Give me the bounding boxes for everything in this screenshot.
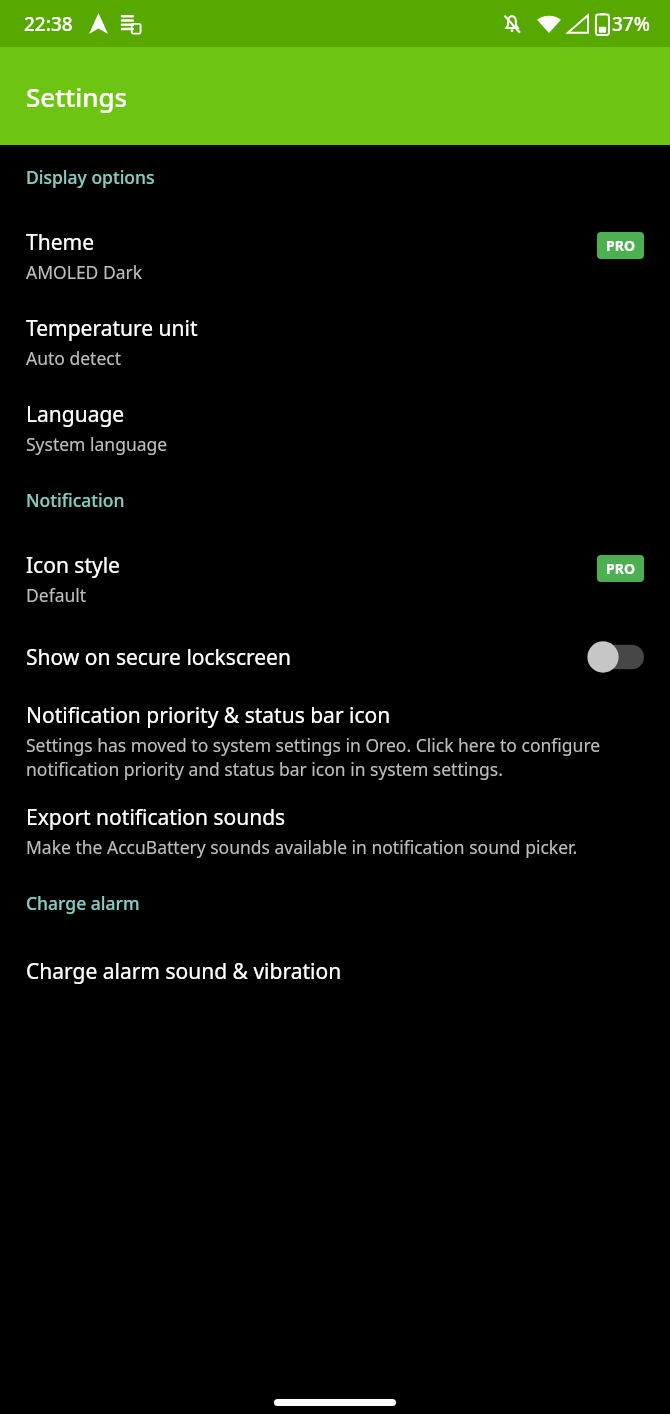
button[interactable]: Charge alarm sound & vibration: [0, 957, 670, 986]
button[interactable]: PRO: [597, 555, 644, 582]
button[interactable]: Show on secure lockscreen toggle: [586, 640, 644, 674]
staticText: Charge alarm sound & vibration: [26, 957, 342, 986]
staticText: Export notification sounds: [26, 803, 286, 832]
staticText: Default: [26, 583, 87, 607]
staticText: Make the AccuBattery sounds available in…: [26, 835, 578, 859]
staticText: Notification: [26, 488, 644, 512]
button[interactable]: Notification priority & status bar icon: [0, 701, 670, 781]
button[interactable]: PRO: [597, 232, 644, 259]
staticText: Notification priority & status bar icon: [26, 701, 391, 730]
button[interactable]: Export notification sounds: [0, 803, 670, 859]
staticText: 22:38: [24, 11, 73, 37]
button[interactable]: Icon style: [0, 551, 670, 607]
button[interactable]: Theme: [0, 228, 670, 284]
staticText: Show on secure lockscreen: [26, 643, 586, 672]
staticText: Settings: [26, 79, 128, 114]
staticText: Language: [26, 400, 125, 429]
staticText: Auto detect: [26, 346, 121, 370]
staticText: Charge alarm: [26, 891, 644, 915]
button[interactable]: Temperature unit: [0, 314, 670, 370]
button[interactable]: Show on secure lockscreen: [0, 640, 670, 674]
staticText: 37%: [612, 11, 650, 37]
staticText: PRO: [606, 236, 635, 255]
staticText: System language: [26, 432, 168, 456]
staticText: Temperature unit: [26, 314, 198, 343]
staticText: Theme: [26, 228, 94, 257]
button[interactable]: Language: [0, 400, 670, 456]
staticText: Display options: [26, 165, 644, 189]
staticText: PRO: [606, 559, 635, 578]
staticText: Icon style: [26, 551, 120, 580]
staticText: Settings has moved to system settings in…: [26, 733, 644, 781]
staticText: AMOLED Dark: [26, 260, 143, 284]
